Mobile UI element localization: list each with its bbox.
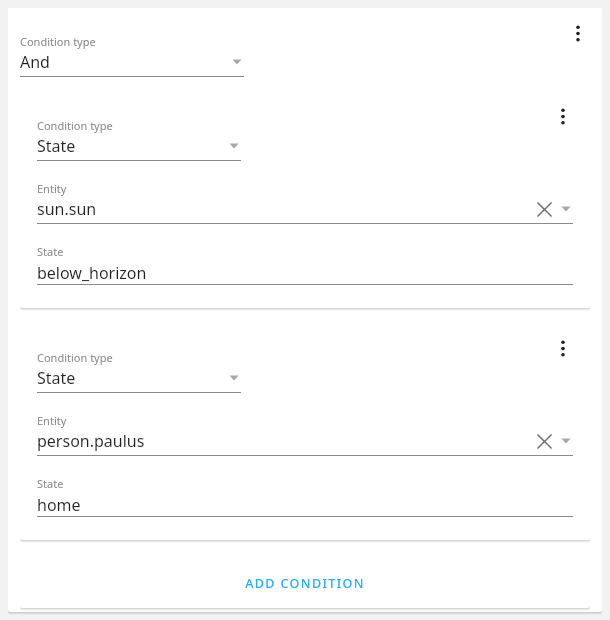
staticText: Entity xyxy=(37,181,67,196)
staticText: below_horizon xyxy=(37,262,573,284)
staticText: State xyxy=(37,135,227,157)
staticText: State xyxy=(37,244,64,259)
staticText: ADD CONDITION xyxy=(245,575,365,592)
staticText: Entity xyxy=(37,413,67,428)
button[interactable]: And xyxy=(20,51,244,73)
button[interactable]: ADD CONDITION xyxy=(20,559,590,608)
staticText: Condition type xyxy=(37,118,113,133)
button[interactable]: below_horizon xyxy=(37,261,573,285)
staticText: State xyxy=(37,367,227,389)
staticText: Condition type xyxy=(20,34,96,49)
staticText: Condition type xyxy=(37,350,113,365)
button[interactable]: More options xyxy=(548,333,578,363)
button[interactable]: Clear entity xyxy=(534,431,554,451)
staticText: sun.sun xyxy=(37,198,534,220)
staticText: And xyxy=(20,51,230,73)
button[interactable]: sun.sun xyxy=(37,198,573,220)
button[interactable]: Clear entity xyxy=(534,199,554,219)
staticText: home xyxy=(37,494,573,516)
staticText: person.paulus xyxy=(37,430,534,452)
button[interactable]: home xyxy=(37,493,573,517)
button[interactable]: More options xyxy=(548,101,578,131)
button[interactable]: More options xyxy=(563,18,593,48)
button[interactable]: State xyxy=(37,367,241,389)
button[interactable]: person.paulus xyxy=(37,430,573,452)
staticText: State xyxy=(37,476,64,491)
button[interactable]: State xyxy=(37,135,241,157)
